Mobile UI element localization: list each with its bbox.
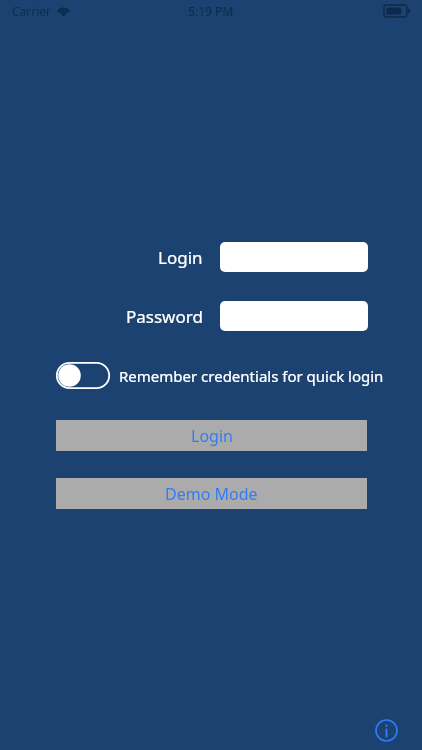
staticText: Remember credentials for quick login: [119, 366, 384, 386]
button[interactable]: [220, 242, 368, 272]
staticText: Demo Mode: [165, 483, 258, 505]
staticText: Login: [191, 425, 233, 447]
staticText: 5:19 PM: [188, 3, 234, 19]
button[interactable]: [220, 301, 368, 331]
button[interactable]: Information: [368, 712, 404, 748]
button[interactable]: Login: [56, 420, 367, 451]
staticText: Carrier: [12, 3, 52, 19]
staticText: Password: [126, 305, 203, 328]
staticText: Login: [158, 246, 203, 269]
button[interactable]: Remember credentials for quick login: [56, 362, 384, 389]
button[interactable]: Demo Mode: [56, 478, 367, 509]
